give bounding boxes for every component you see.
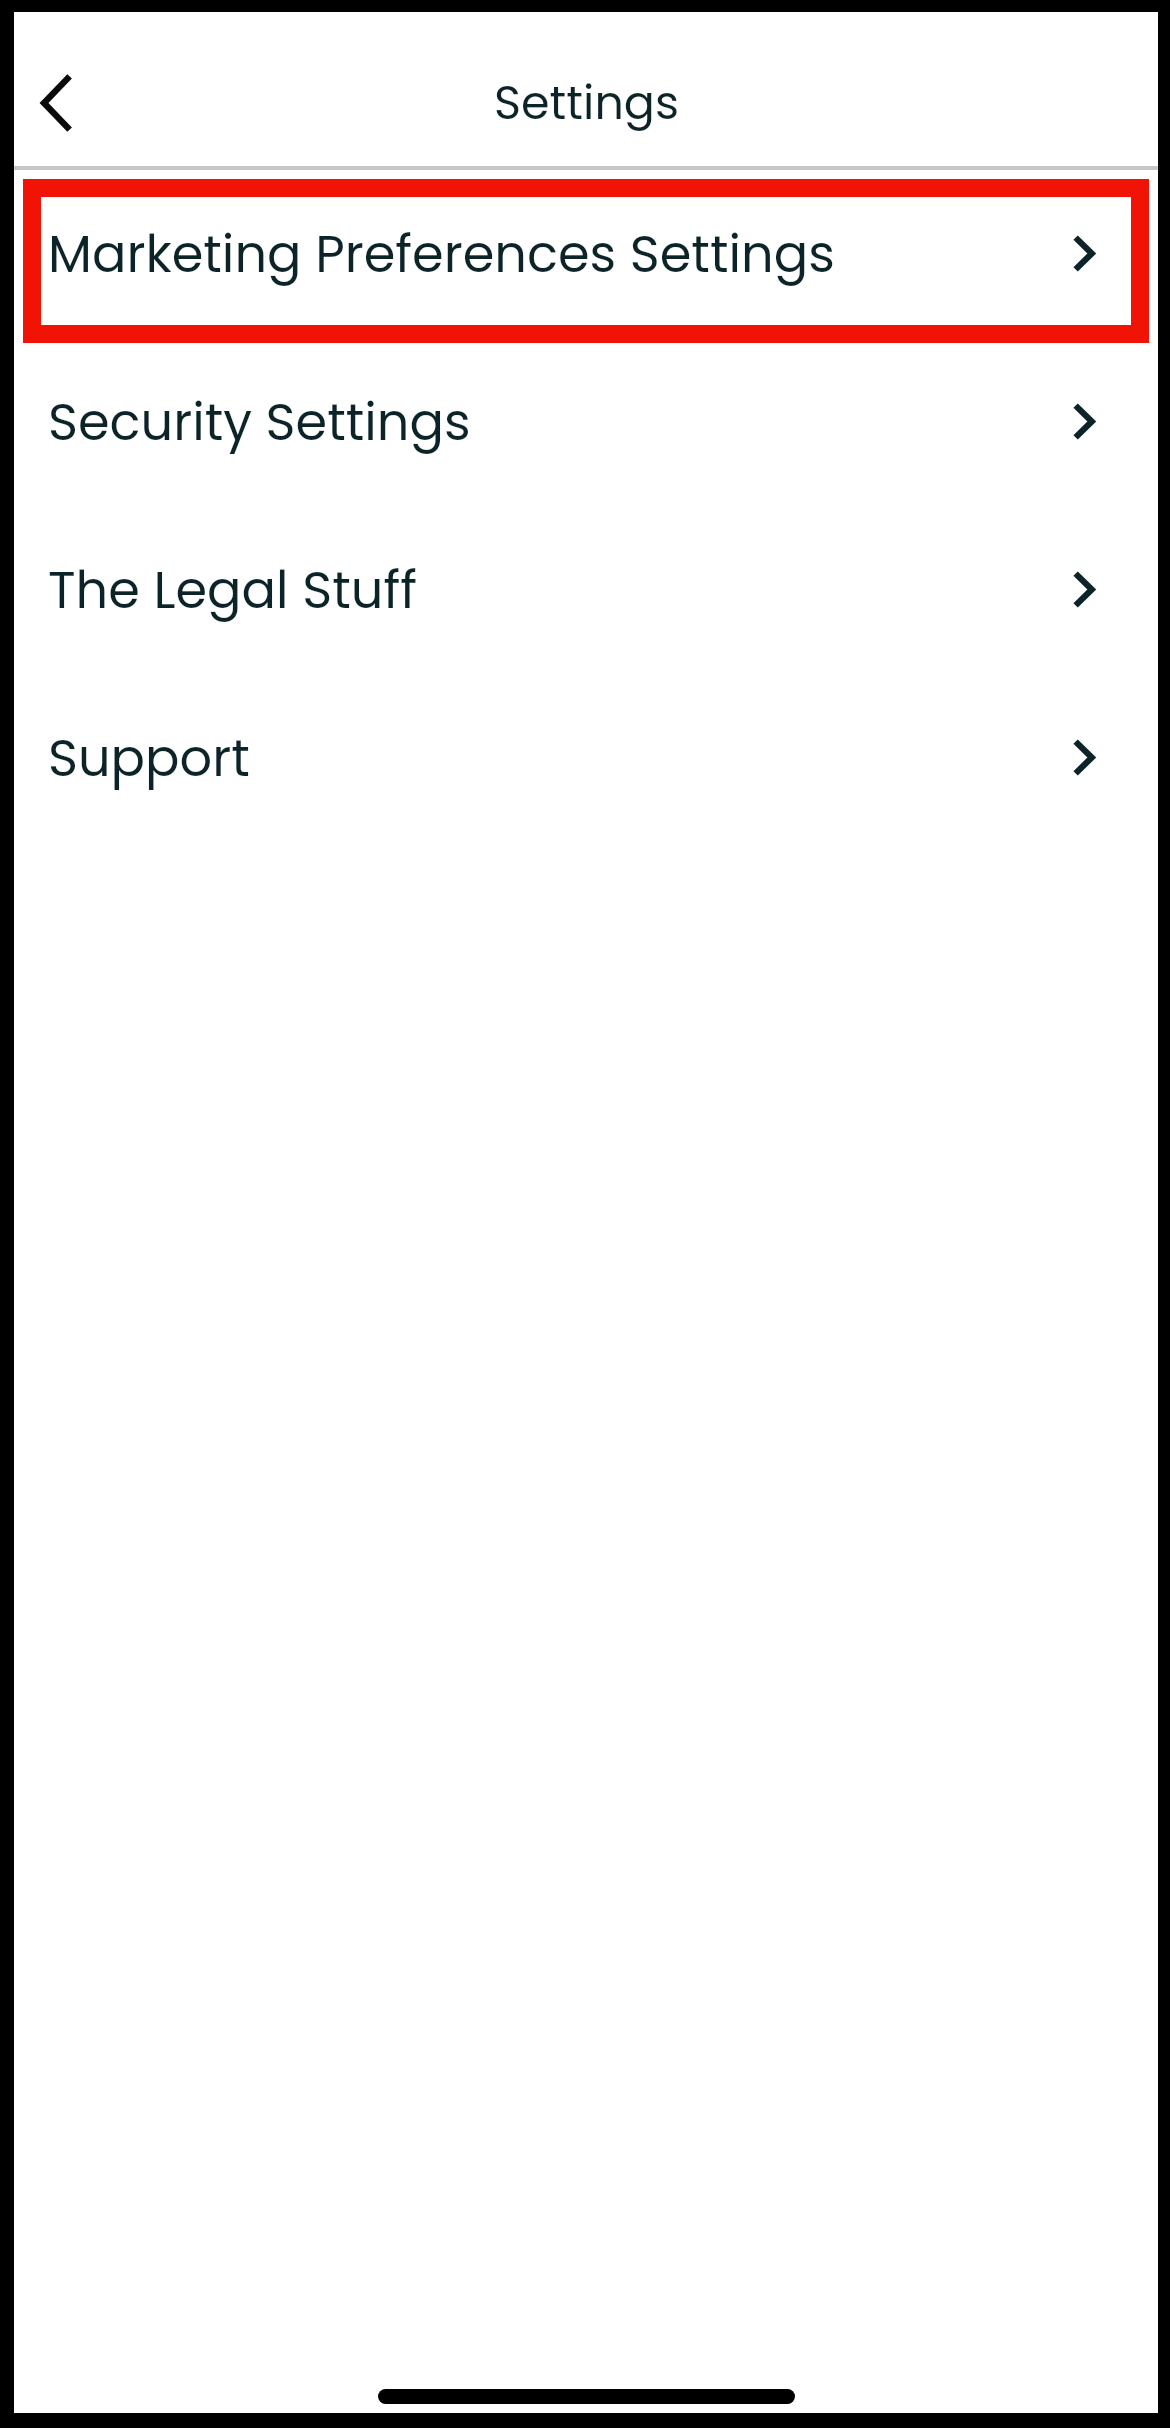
button[interactable]: Support: [14, 674, 1158, 842]
staticText: Marketing Preferences Settings: [48, 218, 835, 289]
button[interactable]: The Legal Stuff: [14, 506, 1158, 674]
button[interactable]: Marketing Preferences Settings: [14, 170, 1158, 338]
staticText: Settings: [494, 71, 679, 135]
staticText: Security Settings: [48, 386, 471, 457]
staticText: The Legal Stuff: [48, 554, 417, 625]
staticText: Support: [48, 722, 250, 793]
button[interactable]: Security Settings: [14, 338, 1158, 506]
button[interactable]: Back: [19, 55, 91, 151]
